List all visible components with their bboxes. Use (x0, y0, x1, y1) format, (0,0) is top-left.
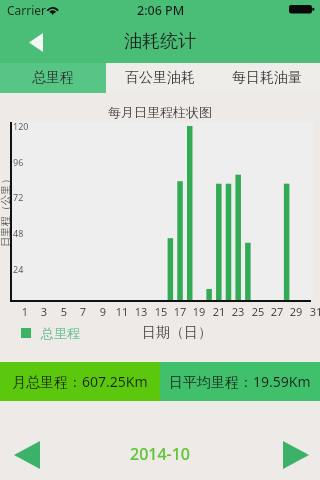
staticText: 月总里程：607.25Km (12, 372, 148, 391)
staticText: 百公里油耗 (125, 69, 195, 87)
staticText: 96 (13, 156, 24, 168)
staticText: 1 (17, 304, 33, 319)
staticText: 27 (269, 304, 285, 319)
staticText: 2:06 PM (137, 2, 185, 19)
staticText: 21 (211, 304, 227, 319)
staticText: 总里程 (41, 325, 80, 341)
staticText: 日里程（公里） (0, 160, 11, 260)
staticText: 9 (95, 304, 111, 319)
staticText: 7 (75, 304, 91, 319)
staticText: 29 (288, 304, 304, 319)
staticText: 15 (153, 304, 169, 319)
staticText: 油耗统计 (124, 30, 196, 53)
button[interactable]: Back (21, 26, 51, 58)
button[interactable]: 总里程 (0, 63, 106, 93)
staticText: 日期（日） (142, 324, 212, 342)
button[interactable]: 日平均里程：19.59Km (160, 362, 320, 401)
staticText: 23 (230, 304, 246, 319)
staticText: 17 (172, 304, 188, 319)
staticText: 25 (250, 304, 266, 319)
button[interactable]: Next month (278, 437, 314, 473)
staticText: 31 (308, 304, 320, 319)
staticText: 48 (13, 227, 24, 239)
button[interactable]: 每日耗油量 (213, 63, 320, 93)
staticText: 120 (13, 120, 29, 132)
staticText: 每日耗油量 (232, 69, 302, 87)
button[interactable]: Previous month (9, 437, 45, 473)
staticText: 日平均里程：19.59Km (169, 372, 311, 391)
staticText: 每月日里程柱状图 (0, 104, 320, 120)
staticText: 3 (36, 304, 52, 319)
staticText: Carrier (7, 2, 47, 18)
staticText: 11 (114, 304, 130, 319)
button[interactable]: 百公里油耗 (106, 63, 213, 93)
staticText: 19 (191, 304, 207, 319)
staticText: 总里程 (32, 69, 74, 87)
staticText: 24 (13, 263, 24, 275)
staticText: 2014-10 (0, 443, 320, 465)
staticText: 72 (13, 191, 24, 203)
button[interactable]: 月总里程：607.25Km (0, 362, 160, 401)
staticText: 13 (133, 304, 149, 319)
staticText: 5 (56, 304, 72, 319)
